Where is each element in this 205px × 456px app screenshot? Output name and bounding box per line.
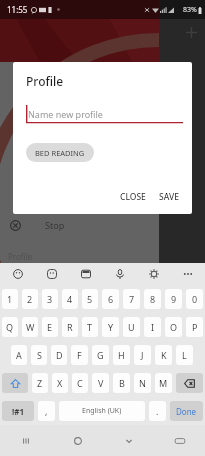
staticText: U: [128, 321, 135, 333]
button[interactable]: 5: [82, 289, 98, 309]
staticText: 9: [171, 293, 177, 305]
button[interactable]: 9: [165, 289, 182, 309]
button[interactable]: Settings: [137, 263, 171, 285]
staticText: 11:55: [7, 4, 28, 15]
staticText: Done: [176, 406, 197, 417]
staticText: Profile: [26, 73, 64, 89]
button[interactable]: J: [134, 345, 151, 365]
button[interactable]: T: [82, 317, 98, 337]
button[interactable]: I: [144, 317, 161, 337]
staticText: Name new profile: [28, 108, 103, 120]
button[interactable]: F: [71, 345, 88, 365]
staticText: L: [182, 349, 187, 361]
button[interactable]: More options: [171, 263, 205, 285]
button[interactable]: BED READING: [26, 143, 94, 162]
staticText: 1: [7, 293, 13, 305]
button[interactable]: Stop: [0, 213, 159, 237]
button[interactable]: ,: [38, 401, 55, 421]
button[interactable]: A: [11, 345, 27, 365]
staticText: M: [159, 377, 168, 389]
button[interactable]: !#1: [2, 401, 34, 421]
button[interactable]: 3: [42, 289, 58, 309]
staticText: J: [141, 349, 144, 361]
button[interactable]: C: [72, 373, 88, 393]
staticText: C: [77, 377, 83, 389]
staticText: 5: [87, 293, 93, 305]
staticText: 0: [192, 293, 198, 305]
button[interactable]: X: [52, 373, 68, 393]
button[interactable]: Y: [102, 317, 119, 337]
button[interactable]: Back: [103, 425, 154, 456]
button[interactable]: 4: [62, 289, 78, 309]
staticText: Z: [37, 377, 43, 389]
button[interactable]: Z: [32, 373, 48, 393]
staticText: N: [139, 377, 146, 389]
button[interactable]: 0: [186, 289, 203, 309]
staticText: W: [26, 321, 35, 333]
staticText: S: [37, 349, 42, 361]
staticText: B: [119, 377, 125, 389]
button[interactable]: Voice input: [103, 263, 137, 285]
staticText: P: [192, 321, 198, 333]
staticText: G: [97, 349, 104, 361]
button[interactable]: Q: [2, 317, 18, 337]
button[interactable]: H: [113, 345, 130, 365]
button[interactable]: Emoji: [0, 263, 35, 285]
staticText: 6: [108, 293, 114, 305]
staticText: BED READING: [35, 148, 85, 158]
button[interactable]: Hide keyboard: [154, 425, 205, 456]
button[interactable]: U: [123, 317, 140, 337]
staticText: O: [170, 321, 178, 333]
button[interactable]: L: [176, 345, 193, 365]
button[interactable]: Done: [170, 401, 203, 421]
button[interactable]: B: [113, 373, 130, 393]
staticText: 2: [27, 293, 33, 305]
staticText: 8: [150, 293, 156, 305]
button[interactable]: SAVE: [154, 188, 184, 206]
button[interactable]: 2: [22, 289, 38, 309]
staticText: .: [156, 405, 159, 417]
button[interactable]: 8: [144, 289, 161, 309]
staticText: V: [98, 377, 104, 389]
button[interactable]: Home: [52, 425, 103, 456]
staticText: !#1: [12, 406, 24, 417]
button[interactable]: N: [134, 373, 151, 393]
staticText: CLOSE: [120, 191, 146, 203]
button[interactable]: E: [42, 317, 58, 337]
staticText: Stop: [45, 219, 65, 231]
staticText: F: [77, 349, 82, 361]
button[interactable]: Backspace: [176, 373, 203, 393]
button[interactable]: Stickers: [35, 263, 69, 285]
staticText: 3: [47, 293, 53, 305]
button[interactable]: G: [92, 345, 109, 365]
staticText: I: [151, 321, 155, 333]
staticText: ,: [45, 405, 48, 417]
button[interactable]: D: [51, 345, 67, 365]
staticText: A: [16, 349, 22, 361]
staticText: 4: [67, 293, 73, 305]
button[interactable]: CLOSE: [115, 188, 151, 206]
button[interactable]: 7: [123, 289, 140, 309]
button[interactable]: K: [155, 345, 172, 365]
staticText: 7: [129, 293, 135, 305]
button[interactable]: Clipboard: [69, 263, 103, 285]
staticText: 83%: [183, 5, 197, 15]
button[interactable]: P: [186, 317, 203, 337]
button[interactable]: .: [149, 401, 166, 421]
staticText: SAVE: [159, 191, 179, 203]
button[interactable]: M: [155, 373, 172, 393]
staticText: X: [57, 377, 63, 389]
button[interactable]: 1: [2, 289, 18, 309]
button[interactable]: O: [165, 317, 182, 337]
button[interactable]: S: [31, 345, 47, 365]
staticText: Q: [6, 321, 14, 333]
button[interactable]: English (UK): [59, 401, 145, 421]
button[interactable]: Add: [182, 23, 200, 41]
button[interactable]: Recents: [0, 425, 52, 456]
button[interactable]: R: [62, 317, 78, 337]
button[interactable]: 6: [102, 289, 119, 309]
button[interactable]: Shift: [2, 373, 28, 393]
staticText: D: [56, 349, 63, 361]
button[interactable]: V: [92, 373, 109, 393]
button[interactable]: W: [22, 317, 38, 337]
